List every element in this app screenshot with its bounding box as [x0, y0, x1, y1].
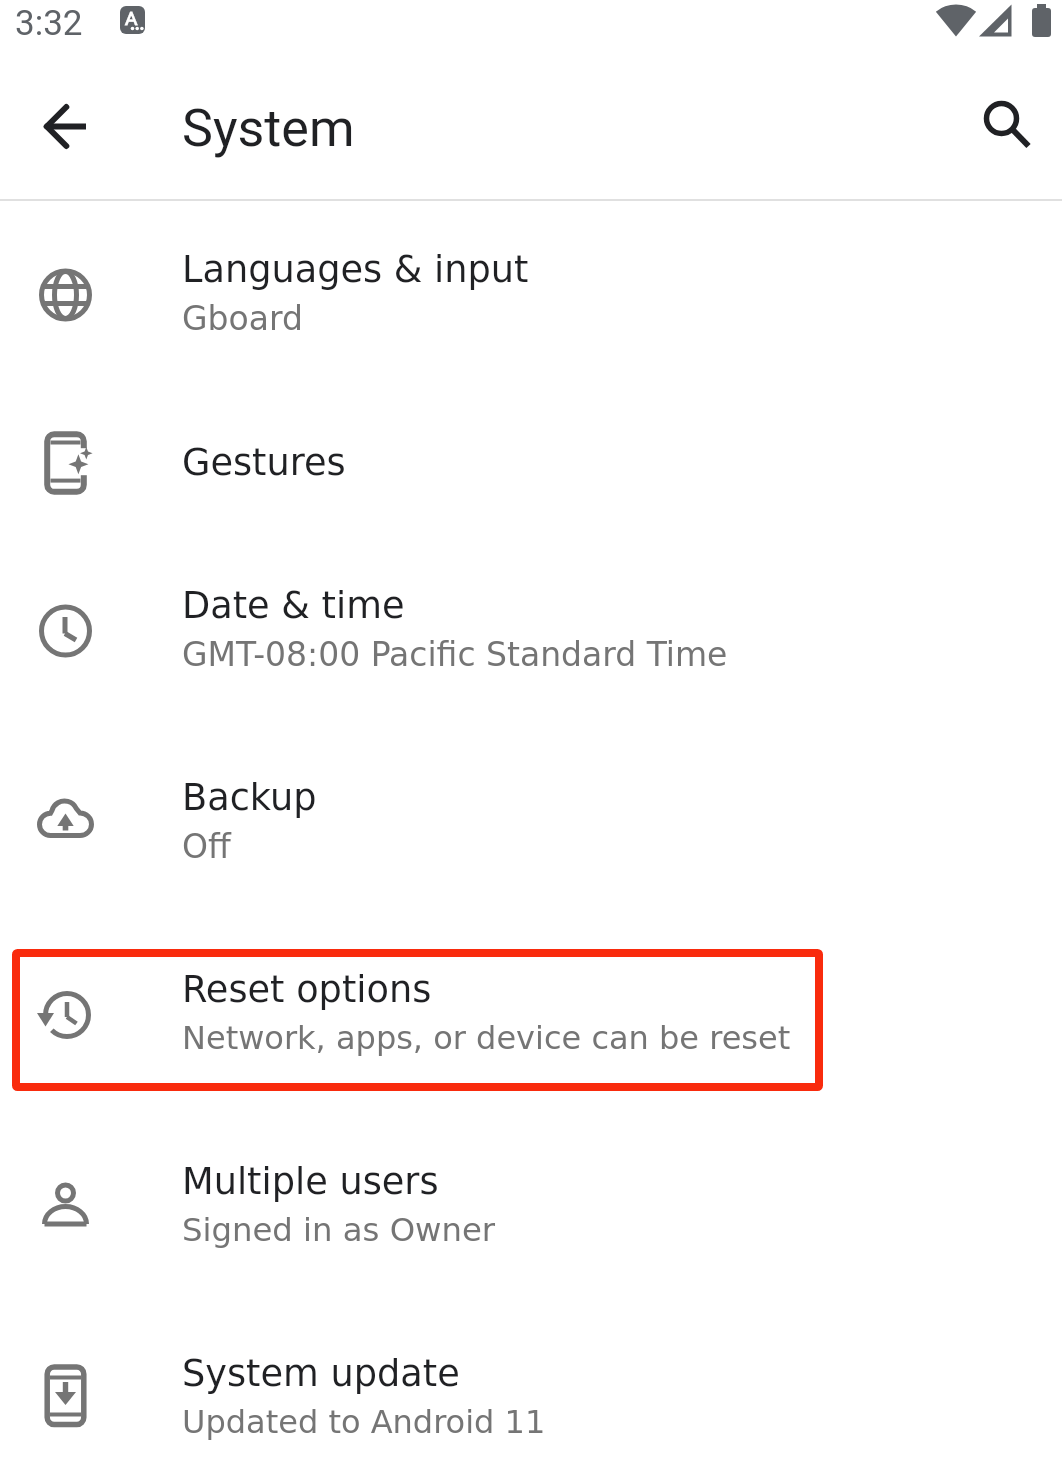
staticText: A [125, 7, 138, 29]
button[interactable]: Reset options [0, 920, 1062, 1112]
staticText: System update [182, 1352, 460, 1395]
button[interactable]: Backup [0, 728, 1062, 920]
staticText: System [182, 98, 355, 159]
staticText: Gboard [182, 299, 303, 337]
button[interactable]: Date & time [0, 536, 1062, 728]
button[interactable] [20, 99, 75, 154]
button[interactable]: Gestures [0, 392, 1062, 536]
staticText: Signed in as Owner [182, 1211, 496, 1249]
staticText: Network, apps, or device can be reset [182, 1019, 791, 1056]
button[interactable]: Multiple users [0, 1112, 1062, 1304]
button[interactable] [975, 95, 1035, 155]
staticText: 3:32 [15, 3, 83, 44]
button[interactable]: System update [0, 1304, 1062, 1461]
staticText: Reset options [182, 968, 432, 1011]
staticText: Off [182, 827, 231, 865]
staticText: Multiple users [182, 1160, 439, 1203]
staticText: Languages & input [182, 248, 529, 291]
button[interactable]: Languages & input [0, 200, 1062, 392]
staticText: Updated to Android 11 [182, 1403, 546, 1440]
staticText: GMT-08:00 Pacific Standard Time [182, 635, 728, 673]
staticText: Gestures [182, 441, 346, 484]
staticText: Date & time [182, 584, 405, 627]
staticText: Backup [182, 776, 317, 819]
